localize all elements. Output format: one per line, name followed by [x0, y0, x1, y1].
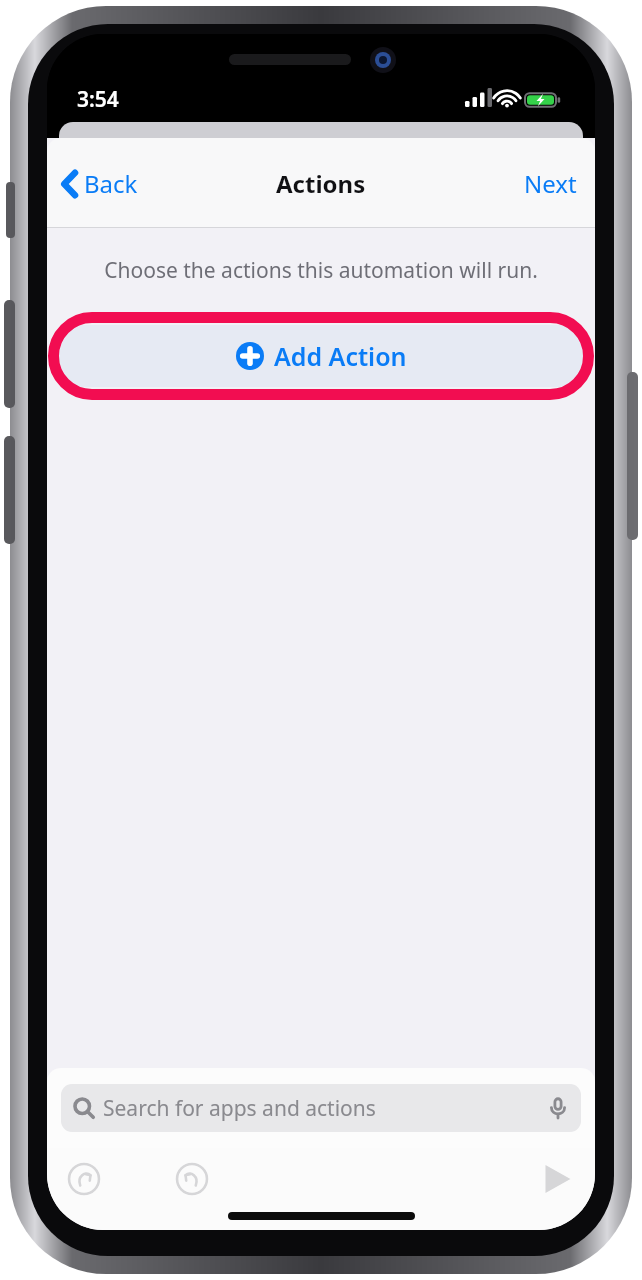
- button[interactable]: Next: [506, 157, 595, 210]
- button[interactable]: Play: [535, 1157, 579, 1201]
- staticText: Choose the actions this automation will …: [67, 256, 575, 285]
- button[interactable]: Redo: [169, 1156, 215, 1202]
- staticText: 3:54: [77, 85, 119, 114]
- staticText: Search for apps and actions: [103, 1094, 376, 1123]
- staticText: Actions: [276, 167, 366, 200]
- button[interactable]: Search for apps and actions: [61, 1084, 581, 1132]
- button[interactable]: Add Action: [59, 325, 583, 387]
- button[interactable]: Back: [47, 157, 154, 210]
- staticText: Add Action: [274, 339, 407, 373]
- staticText: Back: [84, 167, 138, 200]
- staticText: Next: [524, 167, 577, 200]
- other: Dictate: [547, 1097, 569, 1119]
- button[interactable]: Undo: [61, 1156, 107, 1202]
